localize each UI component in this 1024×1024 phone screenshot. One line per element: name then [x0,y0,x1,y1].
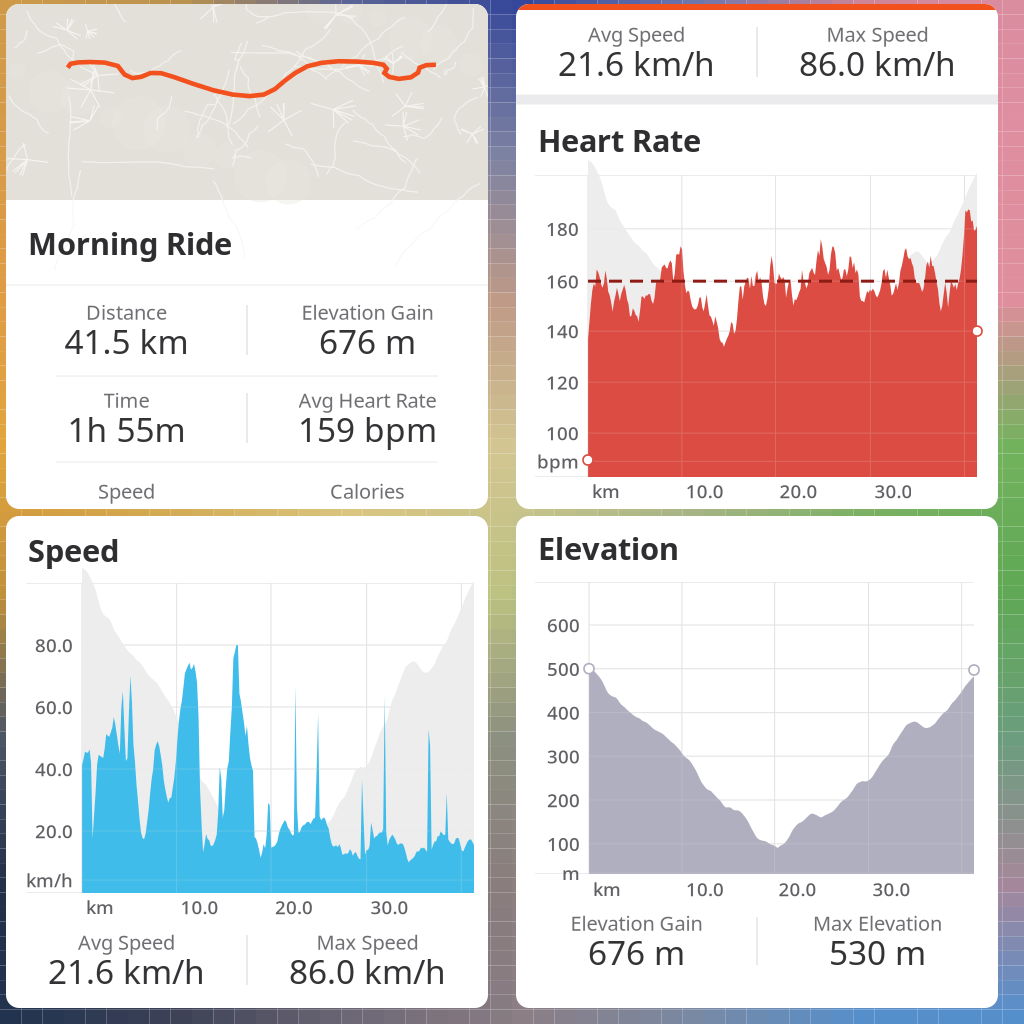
staticText: 120 [546,370,579,395]
staticText: 40.0 [35,757,73,781]
staticText: Elevation Gain [301,299,433,325]
staticText: 1h 55m [67,407,185,451]
staticText: 140 [546,319,579,343]
staticText: Time [103,387,149,413]
staticText: 159 bpm [298,407,437,451]
staticText: Elevation [538,528,679,568]
staticText: km [86,895,114,919]
staticText: 530 m [829,930,926,974]
staticText: Avg Heart Rate [298,387,436,413]
staticText: 160 [546,269,579,294]
button[interactable]: Elevation chart [516,516,998,1008]
staticText: 80.0 [35,633,73,657]
staticText: 86.0 km/h [289,949,446,993]
staticText: 21.6 km/h [48,949,205,993]
staticText: 500 [547,656,580,681]
staticText: 200 [547,788,580,812]
staticText: Avg Speed [78,929,175,955]
staticText: 30.0 [872,877,910,901]
staticText: 300 [547,744,580,769]
staticText: Heart Rate [538,120,701,160]
staticText: Speed [98,478,155,504]
staticText: Avg Speed [588,21,685,47]
staticText: Distance [86,299,167,325]
button[interactable]: Heart Rate chart [516,4,998,509]
staticText: 100 [547,831,580,856]
staticText: 600 [547,613,580,637]
staticText: Calories [330,478,405,504]
staticText: Max Elevation [813,910,942,936]
staticText: 21.6 km/h [558,41,715,85]
staticText: 30.0 [371,895,409,919]
staticText: 676 m [588,930,685,974]
staticText: km [592,479,620,503]
staticText: 10.0 [181,895,219,919]
staticText: Speed [28,530,119,570]
staticText: 180 [546,216,579,241]
button[interactable]: Speed chart [6,516,488,1008]
staticText: 20.0 [35,819,73,843]
staticText: m [562,861,580,885]
staticText: 100 [546,421,579,445]
staticText: Max Speed [316,929,418,955]
staticText: 10.0 [686,479,724,503]
button[interactable]: Morning Ride activity summary [6,4,488,509]
staticText: 20.0 [275,895,313,919]
staticText: 86.0 km/h [799,41,956,85]
staticText: Max Speed [826,21,928,47]
staticText: 20.0 [779,479,817,503]
staticText: 30.0 [874,479,912,503]
staticText: 60.0 [35,695,73,719]
staticText: Morning Ride [28,223,232,263]
staticText: 400 [547,700,580,725]
staticText: bpm [537,449,579,474]
staticText: km [593,877,621,901]
staticText: 10.0 [686,877,724,901]
staticText: 20.0 [779,877,817,901]
staticText: 676 m [319,319,416,363]
staticText: 41.5 km [64,319,188,363]
staticText: km/h [26,868,73,892]
staticText: Elevation Gain [570,910,702,936]
